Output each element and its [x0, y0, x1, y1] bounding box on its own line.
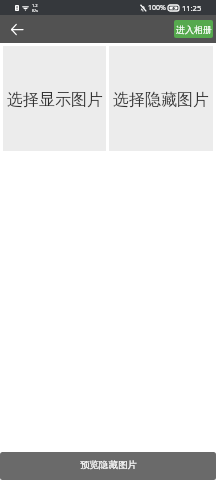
- staticText: 进入相册: [176, 24, 212, 35]
- button[interactable]: 选择显示图片: [3, 46, 106, 151]
- button[interactable]: 进入相册: [174, 20, 213, 38]
- staticText: 1.2: [32, 3, 38, 8]
- staticText: 预览隐藏图片: [80, 459, 137, 471]
- button[interactable]: Back: [5, 17, 29, 41]
- button[interactable]: 选择隐藏图片: [109, 46, 213, 151]
- staticText: K/s: [32, 8, 38, 13]
- staticText: 选择显示图片: [7, 90, 103, 110]
- staticText: 选择隐藏图片: [113, 90, 209, 110]
- button[interactable]: 预览隐藏图片: [0, 452, 216, 480]
- staticText: 100%: [148, 3, 166, 13]
- staticText: 11:25: [182, 3, 202, 13]
